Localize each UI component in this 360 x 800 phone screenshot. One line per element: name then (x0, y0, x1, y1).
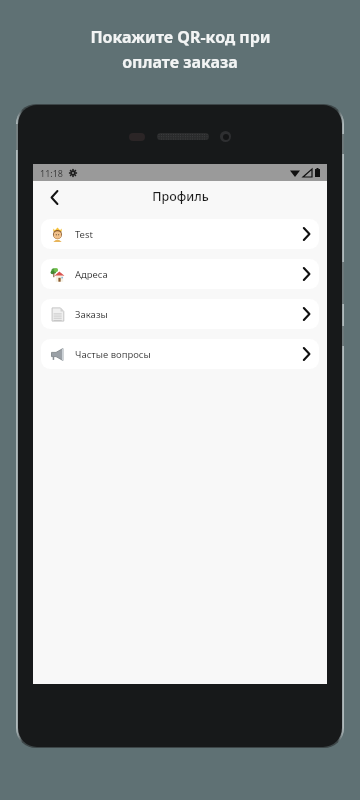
staticText: Test (75, 228, 303, 241)
staticText: Заказы (75, 308, 303, 321)
button[interactable]: Test (41, 219, 319, 249)
staticText: Частые вопросы (75, 348, 303, 361)
button[interactable]: Back (43, 186, 65, 208)
button[interactable]: Заказы (41, 299, 319, 329)
staticText: Адреса (75, 268, 303, 281)
button[interactable]: Частые вопросы (41, 339, 319, 369)
staticText: Профиль (152, 188, 209, 205)
staticText: оплате заказа (122, 51, 238, 73)
button[interactable]: Адреса (41, 259, 319, 289)
staticText: Покажите QR-код при (90, 26, 271, 48)
staticText: 11:18 (40, 167, 64, 179)
